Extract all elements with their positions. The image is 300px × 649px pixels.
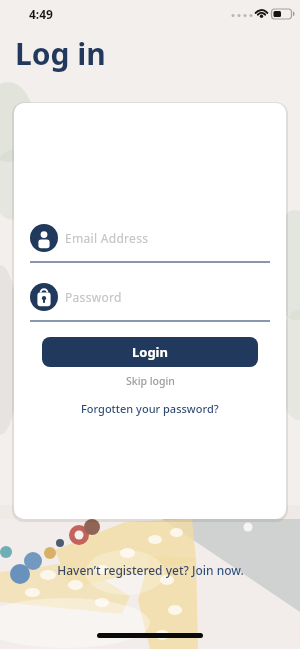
button[interactable]: Haven’t registered yet? Join now.	[57, 562, 244, 578]
button[interactable]: Skip login	[126, 374, 175, 388]
staticText: Log in	[15, 33, 106, 74]
button[interactable]: Login	[42, 337, 258, 367]
staticText: Login	[132, 343, 168, 361]
staticText: Email Address	[65, 230, 149, 246]
button[interactable]: Email Address	[30, 224, 270, 263]
button[interactable]: Password	[30, 283, 270, 322]
button[interactable]: Forgotten your password?	[81, 401, 219, 416]
staticText: Password	[65, 289, 122, 305]
staticText: 4:49	[29, 6, 53, 22]
